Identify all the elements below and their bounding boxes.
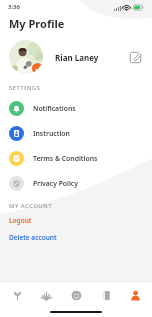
button[interactable]: Edit profile [128,50,143,65]
staticText: Notifications [33,104,76,113]
button[interactable]: Terms & Conditions [0,146,152,171]
staticText: Instruction [33,129,70,138]
button[interactable]: Instruction [0,121,152,146]
staticText: Privacy Policy [33,179,79,188]
button[interactable]: Garden [33,283,59,307]
button[interactable]: Guides [93,283,119,307]
staticText: Terms & Conditions [33,154,98,163]
button[interactable]: Rian Laney [0,38,152,76]
staticText: Logout [9,216,32,225]
staticText: 3:36 [8,3,20,11]
button[interactable]: Plants [4,283,30,307]
staticText: Rian Laney [55,52,99,63]
button[interactable]: Delete account [0,232,152,243]
button[interactable]: Profile [122,283,148,307]
button[interactable]: Community [63,283,89,307]
staticText: Delete account [9,233,57,242]
staticText: MY ACCOUNT [9,202,52,210]
button[interactable]: Privacy Policy [0,171,152,196]
button[interactable]: Logout [0,215,152,226]
staticText: SETTINGS [9,84,41,92]
button[interactable]: Notifications [0,96,152,121]
staticText: My Profile [9,16,65,31]
